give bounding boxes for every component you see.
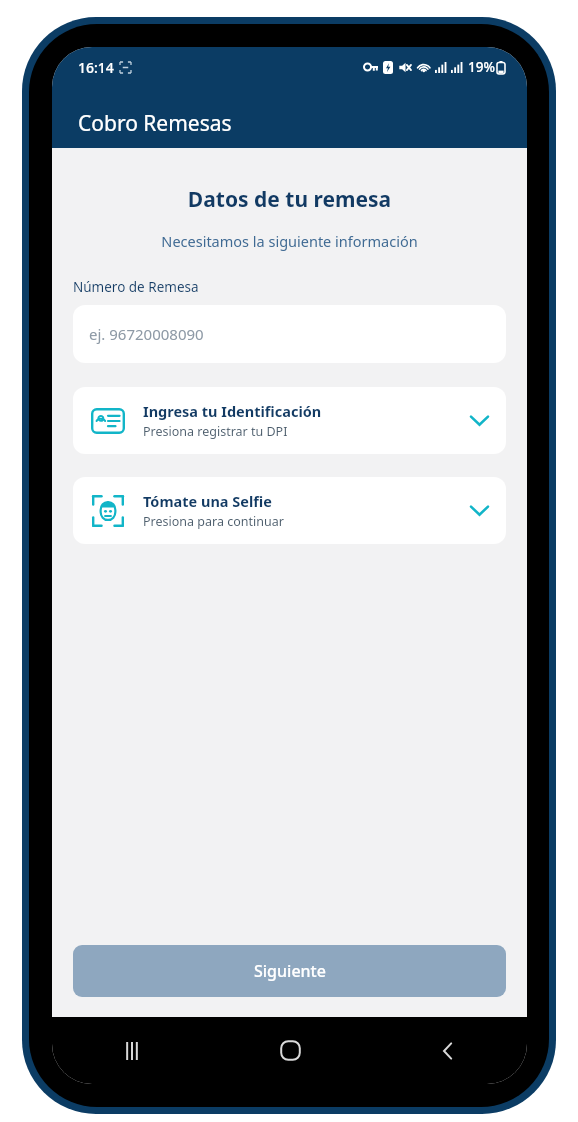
staticText: Tómate una Selfie — [143, 491, 272, 511]
staticText: Ingresa tu Identificación — [143, 401, 322, 421]
staticText: Presiona registrar tu DPI — [143, 423, 288, 440]
staticText: Siguiente — [254, 960, 326, 982]
button[interactable]: Home — [211, 1017, 369, 1084]
staticText: 19% — [468, 58, 495, 76]
button[interactable]: Siguiente — [73, 945, 506, 997]
button[interactable]: Ingresa tu Identificación — [73, 387, 506, 454]
staticText: Datos de tu remesa — [52, 185, 527, 214]
button[interactable]: Tómate una Selfie — [73, 477, 506, 544]
button[interactable]: Back — [369, 1017, 527, 1084]
staticText: Cobro Remesas — [78, 109, 232, 138]
staticText: 16:14 — [78, 58, 114, 77]
button[interactable]: ej. 96720008090 — [73, 305, 506, 363]
staticText: Presiona para continuar — [143, 513, 284, 530]
staticText: Número de Remesa — [73, 278, 199, 296]
button[interactable]: Recents — [52, 1017, 211, 1084]
staticText: ej. 96720008090 — [89, 324, 204, 344]
staticText: Necesitamos la siguiente información — [52, 231, 527, 251]
